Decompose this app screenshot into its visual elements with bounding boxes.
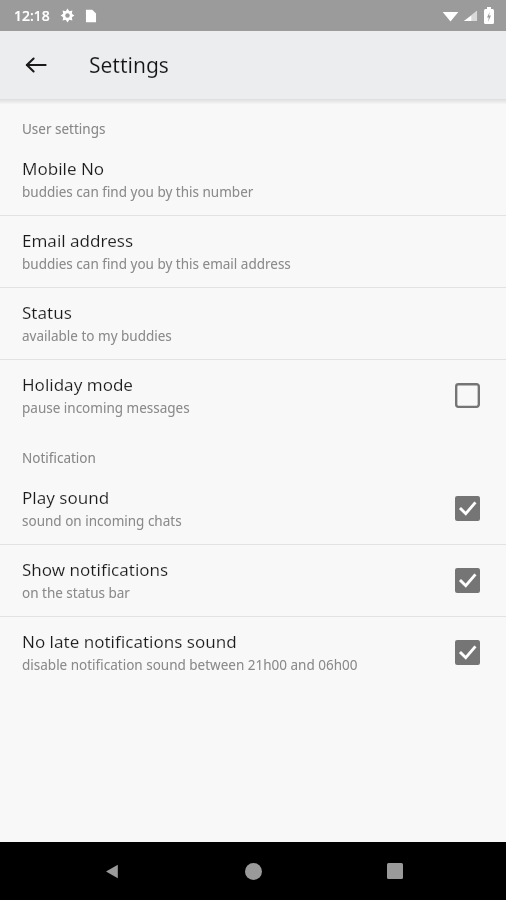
button[interactable]: Email address [0, 216, 506, 287]
staticText: buddies can find you by this email addre… [22, 255, 291, 273]
button[interactable]: Back [82, 842, 142, 900]
staticText: Email address [22, 229, 134, 252]
button[interactable]: No late notifications sound [448, 633, 486, 671]
button[interactable]: Show notifications [0, 545, 506, 616]
button[interactable]: No late notifications sound [0, 617, 506, 688]
button[interactable]: Home [223, 842, 283, 900]
staticText: Mobile No [22, 157, 105, 180]
button[interactable]: Mobile No [0, 144, 506, 215]
staticText: Holiday mode [22, 373, 133, 396]
staticText: disable notification sound between 21h00… [22, 656, 358, 674]
staticText: pause incoming messages [22, 399, 190, 417]
button[interactable]: Show notifications [448, 561, 486, 599]
staticText: Play sound [22, 486, 110, 509]
button[interactable]: Recent apps [365, 842, 425, 900]
staticText: on the status bar [22, 584, 130, 602]
button[interactable]: Back [12, 41, 60, 89]
staticText: 12:18 [14, 6, 50, 25]
staticText: Show notifications [22, 558, 169, 581]
staticText: User settings [22, 120, 106, 138]
button[interactable]: Play sound [448, 489, 486, 527]
staticText: No late notifications sound [22, 630, 237, 653]
staticText: available to my buddies [22, 327, 172, 345]
staticText: Status [22, 301, 72, 324]
button[interactable]: Holiday mode [0, 360, 506, 431]
staticText: Settings [89, 51, 169, 80]
staticText: Notification [22, 449, 96, 467]
button[interactable]: Holiday mode [448, 376, 486, 414]
staticText: buddies can find you by this number [22, 183, 254, 201]
staticText: sound on incoming chats [22, 512, 182, 530]
button[interactable]: Status [0, 288, 506, 359]
button[interactable]: Play sound [0, 473, 506, 544]
